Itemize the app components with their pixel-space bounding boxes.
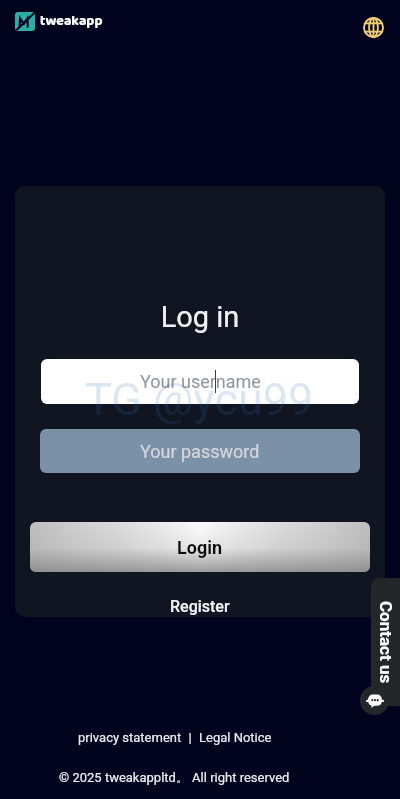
button[interactable]: Register [15, 593, 385, 617]
staticText: Log in [15, 300, 385, 334]
button[interactable]: Open chat [360, 686, 389, 715]
button[interactable]: tweakapp [15, 10, 103, 32]
button[interactable]: privacy statement [78, 730, 182, 745]
button[interactable]: Login [30, 522, 370, 572]
button[interactable]: Your password [40, 429, 360, 473]
button[interactable]: Legal Notice [199, 730, 272, 745]
staticText: Contact us [376, 601, 396, 684]
staticText: Your username [140, 371, 261, 392]
staticText: © 2025 tweakappltd。 All right reserved [59, 769, 290, 785]
button[interactable]: Your username [41, 359, 359, 404]
staticText: tweakapp [40, 10, 103, 32]
staticText: TG @ycu99 [85, 373, 314, 426]
button[interactable]: Contact us [371, 578, 400, 706]
staticText: | [182, 730, 199, 745]
staticText: Login [177, 537, 223, 558]
button[interactable]: Language [358, 12, 388, 42]
staticText: Register [170, 597, 230, 616]
staticText: Your password [140, 441, 260, 462]
